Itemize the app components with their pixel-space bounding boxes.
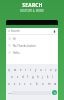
button[interactable]: i	[43, 68, 48, 72]
staticText: Hello	[13, 51, 20, 55]
button[interactable]: h	[35, 75, 40, 79]
staticText: No Thanks button	[13, 44, 36, 48]
staticText: q	[8, 68, 10, 72]
staticText: y	[35, 68, 37, 72]
button[interactable]: v	[28, 82, 34, 86]
button[interactable]: q	[6, 68, 12, 72]
button[interactable]: c	[22, 82, 28, 86]
button[interactable]: k	[45, 75, 50, 79]
button[interactable]: x	[17, 82, 22, 86]
staticText: u	[40, 68, 42, 72]
staticText: v	[30, 82, 32, 86]
button[interactable]: No Thanks button	[6, 42, 58, 49]
staticText: j	[42, 75, 43, 79]
button[interactable]: Hi	[6, 35, 58, 42]
staticText: ?123	[8, 92, 12, 94]
button[interactable]: f	[25, 75, 30, 79]
other: Voice search	[53, 30, 56, 33]
staticText: r	[25, 68, 27, 72]
button[interactable]: Hello	[6, 49, 58, 56]
button[interactable]: d	[20, 75, 25, 79]
staticText: i	[45, 68, 46, 72]
button[interactable]: r	[23, 68, 28, 72]
button[interactable]: a	[9, 75, 15, 79]
button[interactable]: w	[12, 68, 18, 72]
button[interactable]: p	[53, 68, 58, 72]
staticText: o	[50, 68, 52, 72]
staticText: SEARCH	[22, 2, 43, 9]
button[interactable]: o	[48, 68, 53, 72]
button[interactable]: j	[40, 75, 45, 79]
button[interactable]: u	[38, 68, 43, 72]
staticText: z	[14, 82, 16, 86]
staticText: m	[48, 82, 51, 86]
staticText: e	[20, 68, 22, 72]
staticText: g	[32, 75, 34, 79]
staticText: a	[11, 75, 13, 79]
staticText: l	[52, 75, 53, 79]
button[interactable]: s	[15, 75, 20, 79]
button[interactable]: m	[46, 82, 52, 86]
staticText: d	[22, 75, 24, 79]
button[interactable]: Search	[6, 28, 58, 34]
button[interactable]: y	[33, 68, 38, 72]
button[interactable]: Backspace	[52, 82, 58, 86]
staticText: Search	[11, 29, 20, 33]
staticText: x	[19, 82, 21, 86]
staticText: f	[27, 75, 28, 79]
button[interactable]: Shift	[6, 82, 12, 86]
button[interactable]: b	[34, 82, 40, 86]
staticText: s	[17, 75, 19, 79]
staticText: HISTORY & MORE	[20, 9, 44, 13]
button[interactable]: Search	[52, 90, 57, 95]
staticText: c	[24, 82, 26, 86]
staticText: Hi	[13, 37, 16, 41]
button[interactable]: e	[18, 68, 23, 72]
staticText: h	[37, 75, 39, 79]
button[interactable]: Symbols	[7, 90, 12, 95]
button[interactable]: l	[50, 75, 55, 79]
button[interactable]: n	[40, 82, 46, 86]
staticText: w	[14, 68, 17, 72]
staticText: k	[47, 75, 49, 79]
staticText: b	[36, 82, 38, 86]
staticText: t	[30, 68, 31, 72]
button[interactable]: z	[12, 82, 17, 86]
button[interactable]: g	[30, 75, 35, 79]
button[interactable]: t	[28, 68, 33, 72]
staticText: n	[42, 82, 44, 86]
staticText: p	[55, 68, 57, 72]
